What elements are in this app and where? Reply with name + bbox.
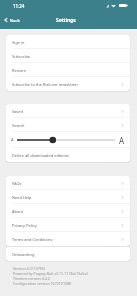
staticText: Search <box>12 123 120 128</box>
staticText: FAQs <box>12 181 120 186</box>
button[interactable]: Saved <box>6 104 130 118</box>
staticText: Settings <box>56 17 76 24</box>
staticText: Need Help <box>12 195 120 200</box>
button[interactable]: Restore <box>6 63 130 77</box>
button[interactable]: Onboarding <box>6 247 130 261</box>
staticText: Subscribe to the Risk.net newsletter <box>12 82 120 87</box>
button[interactable]: Subscribe <box>6 49 130 63</box>
button[interactable]: Delete all downloaded editions <box>6 148 130 162</box>
button[interactable]: Need Help <box>6 190 130 204</box>
staticText: 11:24 <box>13 3 25 9</box>
button[interactable]: Terms and Conditions <box>6 232 130 246</box>
staticText: Terms and Conditions <box>12 237 120 242</box>
button[interactable]: About <box>6 204 130 218</box>
staticText: Restore <box>12 68 125 73</box>
staticText: Back <box>10 17 20 23</box>
button[interactable]: Back <box>0 17 24 23</box>
staticText: Version 4.3 (13765) Powered by Pugpig Bo… <box>13 266 88 286</box>
button[interactable]: Subscribe to the Risk.net newsletter <box>6 77 130 91</box>
staticText: Saved <box>12 109 120 114</box>
staticText: Onboarding <box>12 252 125 257</box>
staticText: Sign in <box>12 40 125 45</box>
button[interactable]: Search <box>6 118 130 132</box>
staticText: About <box>12 209 120 214</box>
staticText: A <box>11 137 14 142</box>
staticText: A <box>119 135 125 146</box>
staticText: Delete all downloaded editions <box>12 153 125 158</box>
staticText: Privacy Policy <box>12 223 120 228</box>
button[interactable]: FAQs <box>6 176 130 190</box>
button[interactable]: Privacy Policy <box>6 218 130 232</box>
button[interactable]: Sign in <box>6 35 130 49</box>
staticText: Subscribe <box>12 54 125 59</box>
